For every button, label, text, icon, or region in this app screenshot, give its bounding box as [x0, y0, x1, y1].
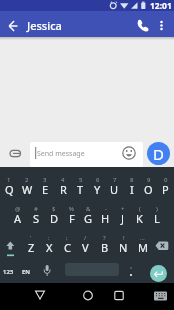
- staticText: N: [119, 240, 128, 255]
- staticText: /: [84, 234, 87, 242]
- staticText: 2: [25, 176, 29, 184]
- button[interactable]: 6: [89, 167, 106, 196]
- button[interactable]: ): [148, 196, 165, 225]
- staticText: EN: [22, 268, 30, 276]
- button[interactable]: !: [114, 225, 133, 254]
- button[interactable]: [33, 288, 47, 302]
- staticText: ;: [66, 234, 68, 242]
- staticText: ): [156, 205, 158, 213]
- button[interactable]: 4: [54, 167, 72, 196]
- staticText: 0: [164, 176, 168, 184]
- staticText: J: [121, 211, 125, 226]
- button[interactable]: [5, 144, 25, 164]
- button[interactable]: 2: [18, 167, 36, 196]
- button[interactable]: 3: [36, 167, 54, 196]
- staticText: B: [101, 240, 109, 255]
- button[interactable]: [4, 14, 24, 34]
- button[interactable]: [132, 14, 152, 34]
- button[interactable]: [124, 254, 138, 283]
- staticText: T: [77, 182, 84, 197]
- staticText: &: [86, 205, 91, 213]
- button[interactable]: (: [131, 196, 148, 225]
- button[interactable]: 0: [157, 167, 174, 196]
- button[interactable]: [112, 288, 126, 302]
- staticText: :: [48, 234, 50, 242]
- staticText: !: [123, 234, 125, 242]
- staticText: Y: [94, 182, 101, 197]
- staticText: D: [50, 211, 59, 226]
- button[interactable]: [121, 145, 137, 161]
- button[interactable]: [40, 256, 54, 283]
- button[interactable]: [81, 288, 95, 302]
- staticText: 8: [130, 176, 134, 184]
- staticText: U: [110, 182, 119, 197]
- staticText: X: [46, 240, 53, 255]
- staticText: 9: [147, 176, 151, 184]
- staticText: @: [15, 205, 21, 213]
- staticText: Q: [5, 182, 14, 197]
- staticText: C: [64, 240, 71, 255]
- staticText: W: [22, 182, 33, 197]
- button[interactable]: EN: [19, 254, 33, 283]
- staticText: 12:01: [150, 0, 172, 11]
- button[interactable]: :: [40, 225, 58, 254]
- staticText: R: [60, 182, 67, 197]
- staticText: Z: [28, 240, 35, 255]
- button[interactable]: [0, 225, 22, 254]
- staticText: E: [42, 182, 49, 197]
- staticText: -: [105, 205, 107, 213]
- staticText: Send message: [37, 149, 85, 159]
- staticText: +: [121, 205, 125, 213]
- staticText: ': [30, 234, 32, 242]
- staticText: 3: [43, 176, 47, 184]
- staticText: 4: [61, 176, 65, 184]
- button[interactable]: +: [114, 196, 131, 225]
- button[interactable]: @: [9, 196, 27, 225]
- staticText: ?: [103, 234, 106, 242]
- button[interactable]: 1: [0, 167, 18, 196]
- button[interactable]: /: [76, 225, 95, 254]
- staticText: A: [14, 211, 22, 226]
- staticText: 7: [113, 176, 117, 184]
- button[interactable]: ;: [58, 225, 76, 254]
- button[interactable]: 7: [106, 167, 123, 196]
- button[interactable]: D: [147, 142, 170, 165]
- staticText: M: [138, 240, 148, 255]
- staticText: …: [140, 234, 145, 242]
- button[interactable]: 123: [0, 254, 17, 283]
- staticText: 1: [7, 176, 11, 184]
- staticText: F: [69, 211, 75, 226]
- button[interactable]: ?: [95, 225, 114, 254]
- button[interactable]: Send message: [30, 142, 143, 167]
- button[interactable]: [153, 291, 168, 302]
- button[interactable]: -: [97, 196, 114, 225]
- button[interactable]: [152, 14, 170, 34]
- button[interactable]: %: [63, 196, 80, 225]
- staticText: G: [84, 211, 93, 226]
- button[interactable]: $: [45, 196, 63, 225]
- staticText: #: [34, 205, 38, 213]
- staticText: S: [33, 211, 40, 226]
- staticText: 6: [96, 176, 100, 184]
- staticText: I: [130, 182, 134, 197]
- staticText: (: [139, 205, 141, 213]
- staticText: V: [82, 240, 89, 255]
- button[interactable]: #: [27, 196, 45, 225]
- staticText: %: [69, 205, 74, 213]
- button[interactable]: ': [22, 225, 40, 254]
- button[interactable]: &: [80, 196, 97, 225]
- button[interactable]: 9: [140, 167, 157, 196]
- button[interactable]: 8: [123, 167, 140, 196]
- staticText: H: [101, 211, 110, 226]
- button[interactable]: [152, 225, 174, 254]
- staticText: Jessica: [27, 18, 62, 33]
- staticText: $: [52, 205, 56, 213]
- staticText: L: [154, 211, 160, 226]
- staticText: K: [136, 211, 143, 226]
- button[interactable]: 5: [72, 167, 89, 196]
- staticText: P: [162, 182, 169, 197]
- staticText: 5: [79, 176, 83, 184]
- button[interactable]: …: [133, 225, 152, 254]
- button[interactable]: [150, 265, 167, 282]
